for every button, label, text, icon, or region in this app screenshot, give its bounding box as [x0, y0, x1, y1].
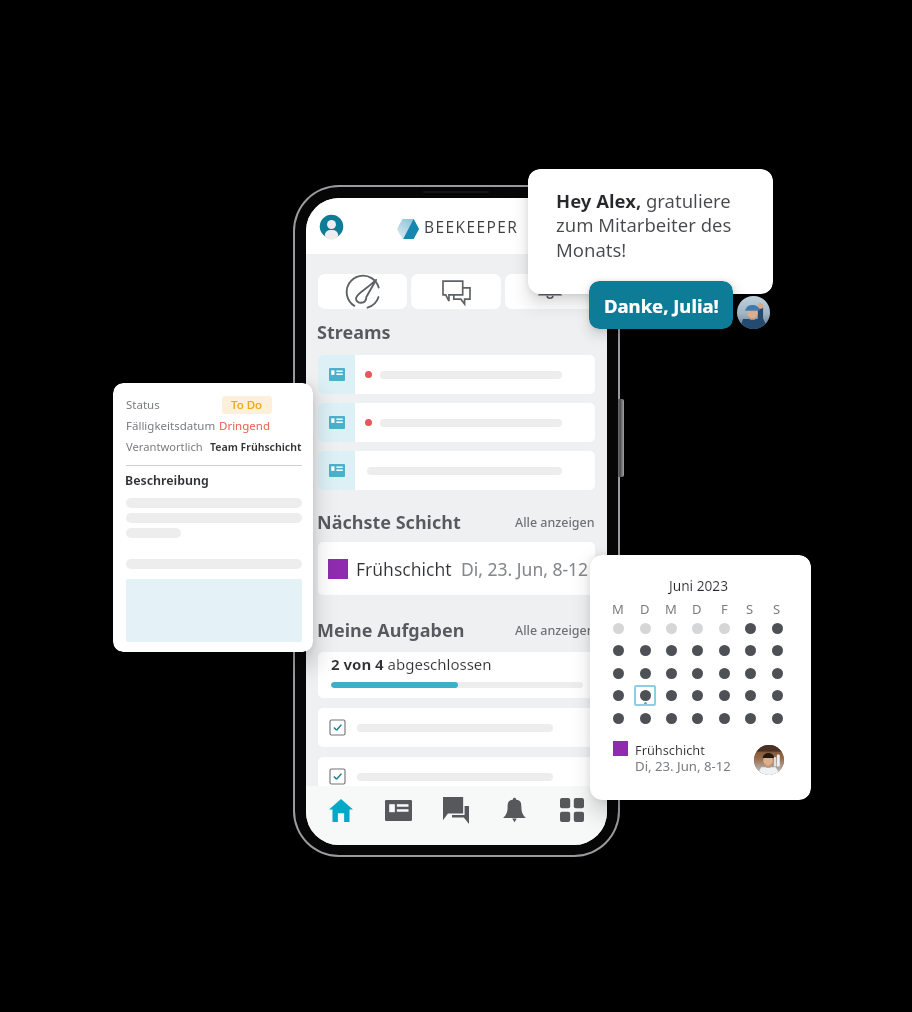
staticText: Streams [317, 320, 391, 344]
staticText: BEEKEEPER [424, 216, 519, 237]
staticText: 2 von 4 abgeschlossen [331, 654, 492, 674]
staticText: Danke, Julia! [604, 293, 719, 318]
staticText: Beschreibung [125, 472, 209, 489]
staticText: Status [126, 397, 160, 413]
button[interactable] [318, 757, 595, 796]
staticText: Team Frühschicht [210, 440, 302, 454]
staticText: Frühschicht [635, 741, 705, 758]
staticText: M [612, 600, 624, 618]
staticText: S [746, 600, 754, 618]
button[interactable] [318, 451, 595, 490]
staticText: Meine Aufgaben [317, 618, 465, 642]
button[interactable] [318, 708, 595, 747]
button[interactable]: More [543, 786, 601, 834]
staticText: D [692, 600, 702, 618]
staticText: Di, 23. Jun, 8-12 [461, 557, 589, 581]
button[interactable]: Alle anzeigen [513, 512, 597, 533]
button[interactable]: Profile [318, 213, 345, 240]
staticText: D [640, 600, 650, 618]
button[interactable]: Danke, Julia! [589, 281, 733, 329]
button[interactable]: Chats [427, 786, 485, 834]
staticText: F [721, 600, 728, 618]
button[interactable]: Frühschicht [318, 542, 595, 595]
button[interactable]: Alle anzeigen [513, 620, 597, 641]
staticText: Verantwortlich [126, 439, 203, 454]
staticText: To Do [231, 397, 263, 413]
staticText: S [773, 600, 781, 618]
button[interactable] [318, 403, 595, 442]
staticText: Frühschicht [356, 557, 452, 581]
staticText: Dringend [219, 418, 270, 434]
staticText: Alle anzeigen [515, 514, 595, 531]
staticText: M [665, 600, 677, 618]
button[interactable]: Quick action [411, 274, 501, 309]
other: Alex avatar [737, 296, 770, 329]
button[interactable]: Home [312, 786, 369, 834]
button[interactable]: Notifications [485, 786, 543, 834]
staticText: Alle anzeigen [515, 622, 595, 639]
button[interactable]: Quick action [318, 274, 407, 309]
staticText: Nächste Schicht [317, 510, 461, 534]
staticText: Hey Alex, gratuliere zum Mitarbeiter des… [556, 188, 751, 263]
staticText: Fälligkeitsdatum [126, 418, 216, 434]
button[interactable] [318, 355, 595, 394]
staticText: Juni 2023 [590, 576, 809, 595]
button[interactable]: Streams [369, 786, 427, 834]
button[interactable]: Quick action [505, 274, 595, 309]
staticText: Di, 23. Jun, 8-12 [635, 757, 731, 775]
other: Teammate avatar [754, 745, 784, 775]
